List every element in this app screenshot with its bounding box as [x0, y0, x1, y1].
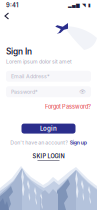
button[interactable]: Login — [21, 124, 75, 134]
button[interactable]: Forgot Password? — [45, 103, 91, 110]
staticText: ▂▄▆ ◥ ▮ — [68, 2, 91, 8]
staticText: Forgot Password? — [45, 103, 91, 110]
button[interactable]: Sign up — [70, 140, 87, 146]
staticText: SKIP LOGIN — [32, 153, 64, 160]
staticText: Email Address* — [11, 73, 50, 80]
staticText: Don't have an account? — [10, 140, 68, 146]
button[interactable]: Back — [0, 10, 13, 22]
button[interactable]: SKIP LOGIN — [32, 153, 64, 161]
staticText: Lorem ipsum dolor sit amet — [6, 58, 72, 65]
staticText: Sign up — [70, 140, 87, 146]
staticText: 9:41 — [6, 1, 18, 9]
staticText: 👁 — [79, 89, 86, 95]
staticText: Sign In — [6, 46, 32, 56]
staticText: Login — [40, 125, 57, 132]
staticText: Password* — [11, 89, 38, 95]
